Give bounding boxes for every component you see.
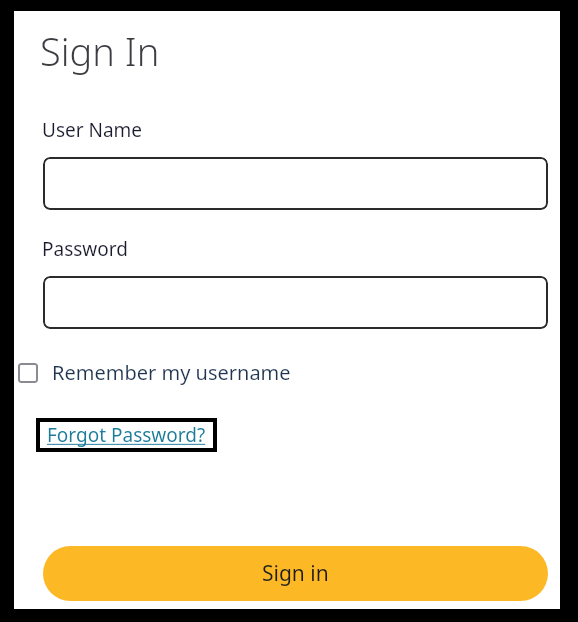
staticText: User Name bbox=[42, 117, 143, 143]
button[interactable]: Sign in bbox=[43, 546, 548, 601]
staticText: Sign in bbox=[262, 559, 329, 588]
button[interactable]: Remember my username checkbox bbox=[18, 357, 299, 388]
staticText: Sign In bbox=[40, 25, 160, 77]
staticText: Remember my username bbox=[52, 359, 291, 386]
staticText: Forgot Password? bbox=[47, 422, 206, 448]
button[interactable]: Forgot Password? bbox=[36, 418, 217, 452]
staticText: Password bbox=[42, 236, 128, 262]
other: Remember my username checkbox bbox=[18, 363, 38, 383]
button[interactable]: Text input field bbox=[43, 157, 548, 210]
button[interactable]: Text input field bbox=[43, 276, 548, 329]
